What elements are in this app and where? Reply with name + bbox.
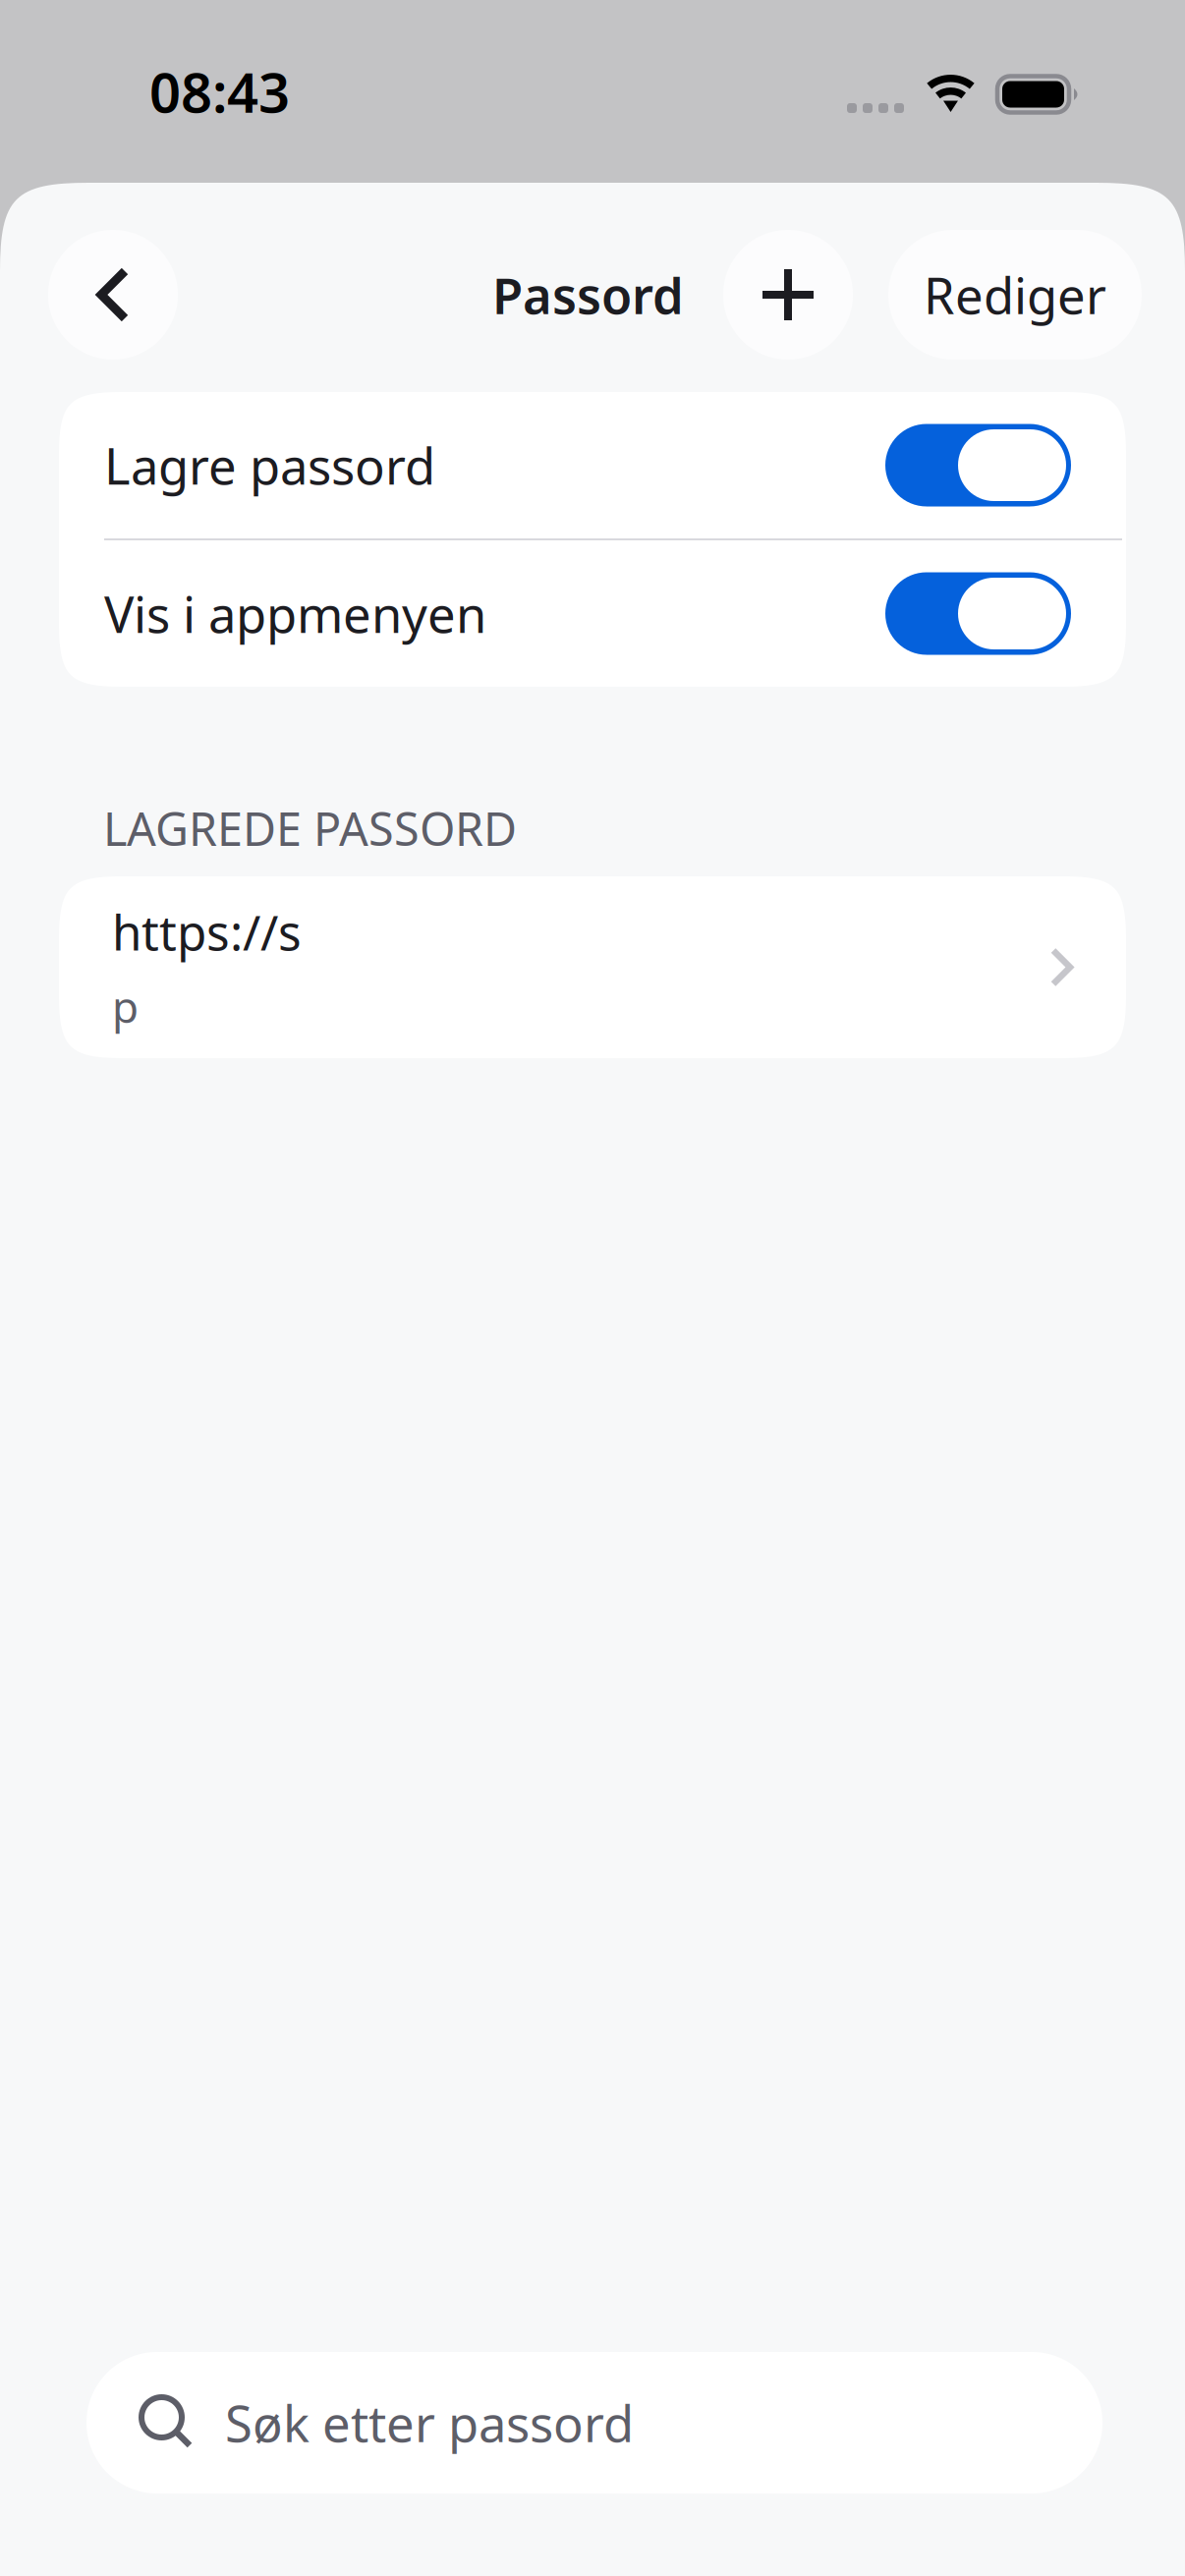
staticText: Lagre passord: [104, 432, 435, 498]
button[interactable]: Add password: [723, 230, 853, 360]
button[interactable]: Vis i appmenyen: [59, 540, 1126, 687]
staticText: LAGREDE PASSORD: [103, 798, 517, 859]
button[interactable]: https://s: [59, 876, 1126, 1058]
button[interactable]: Rediger: [888, 230, 1142, 360]
button[interactable]: Lagre passord: [59, 392, 1126, 538]
staticText: Vis i appmenyen: [104, 581, 486, 647]
staticText: https://s: [112, 899, 302, 964]
button[interactable]: Søk etter passord: [86, 2352, 1102, 2493]
staticText: p: [112, 978, 139, 1035]
staticText: Passord: [492, 262, 684, 328]
staticText: 08:43: [149, 55, 290, 128]
staticText: Rediger: [924, 262, 1106, 328]
button[interactable]: Back: [48, 230, 178, 360]
staticText: Søk etter passord: [225, 2390, 634, 2456]
